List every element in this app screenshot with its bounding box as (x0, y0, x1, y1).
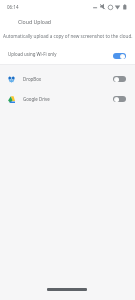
button[interactable]: Switch on (113, 53, 126, 59)
staticText: Google Drive (23, 96, 50, 102)
staticText: Automatically upload a copy of new scree… (3, 33, 133, 39)
button[interactable]: Upload using Wi-Fi only (0, 47, 135, 65)
button[interactable]: Google Drive (0, 89, 135, 109)
staticText: DropBox (23, 76, 42, 82)
button[interactable]: Switch off (113, 96, 126, 102)
staticText: Cloud Upload (18, 18, 52, 25)
button[interactable]: Switch off (113, 76, 126, 82)
staticText: 06:14 (7, 4, 19, 10)
button[interactable]: DropBox (0, 69, 135, 89)
staticText: Upload using Wi-Fi only (8, 51, 57, 57)
